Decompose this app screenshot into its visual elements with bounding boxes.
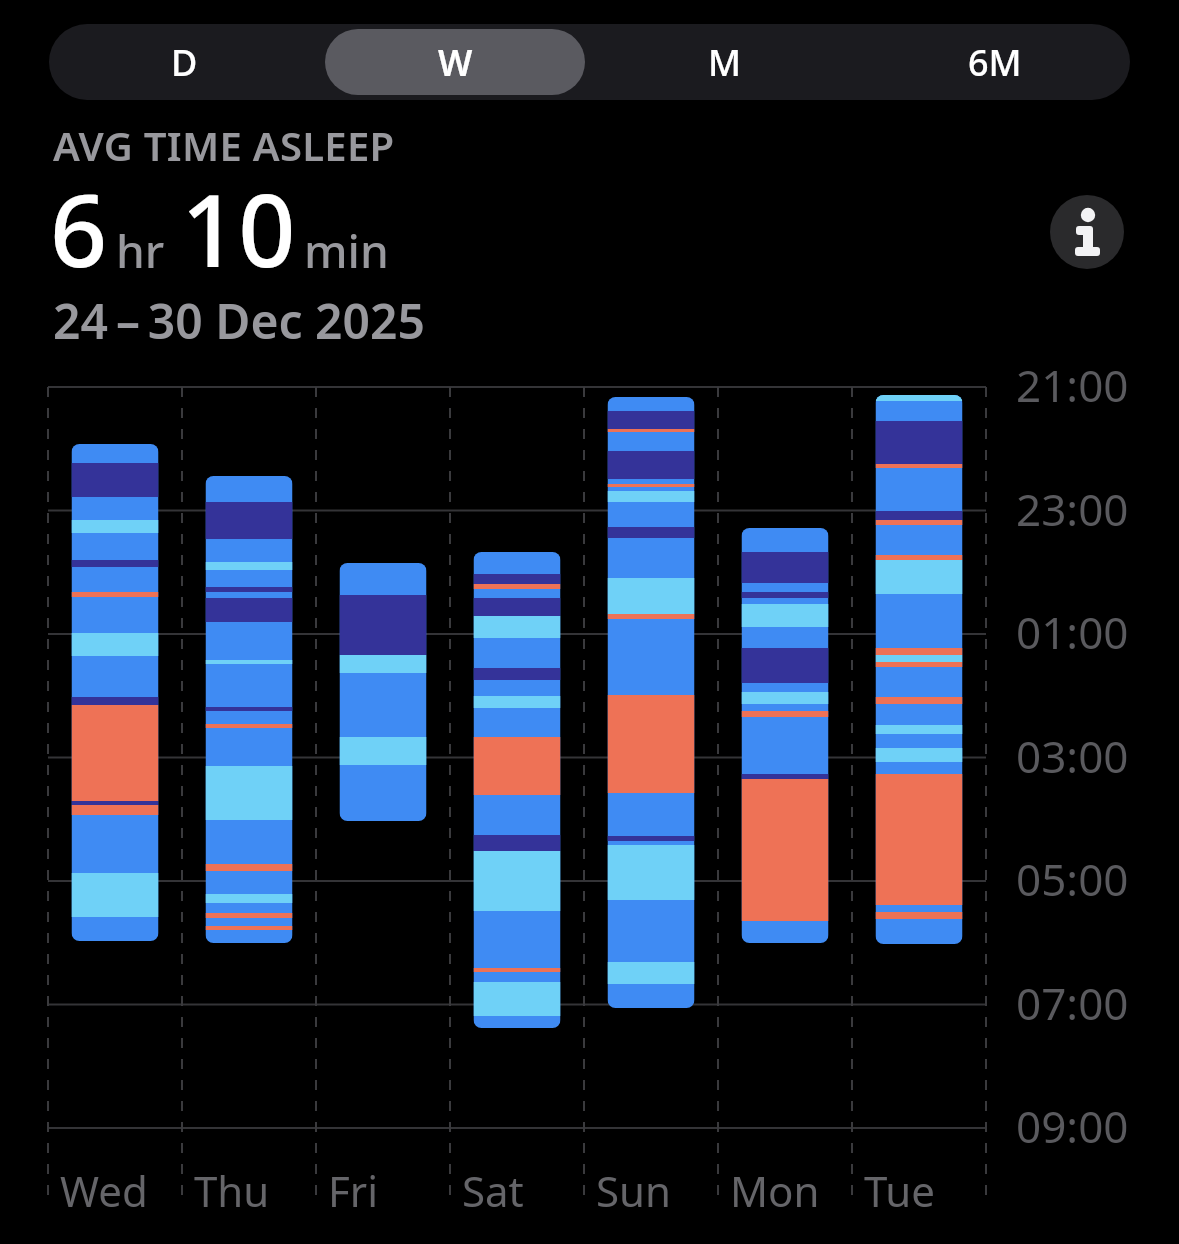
staticText: Tue	[864, 1162, 935, 1219]
staticText: Sun	[596, 1162, 671, 1219]
staticText: D	[171, 38, 198, 87]
staticText: 6	[50, 160, 108, 296]
staticText: 24 – 30 Dec 2025	[53, 288, 425, 353]
button[interactable]: M	[595, 29, 855, 95]
staticText: 07:00	[1016, 973, 1129, 1033]
staticText: min	[304, 219, 389, 282]
staticText: 01:00	[1016, 602, 1129, 662]
button[interactable]: W	[325, 29, 585, 95]
staticText: Wed	[60, 1162, 148, 1219]
staticText: 10	[181, 160, 296, 296]
staticText: 03:00	[1016, 726, 1129, 786]
button[interactable]	[1050, 195, 1124, 269]
button[interactable]: 6M	[865, 29, 1125, 95]
staticText: M	[708, 38, 742, 87]
staticText: hr	[116, 219, 165, 282]
staticText: 23:00	[1016, 479, 1129, 539]
staticText: W	[438, 38, 473, 87]
staticText: AVG TIME ASLEEP	[53, 118, 395, 172]
staticText: 05:00	[1016, 849, 1129, 909]
staticText: Thu	[194, 1162, 270, 1219]
staticText: Fri	[328, 1162, 378, 1219]
staticText: Mon	[730, 1162, 820, 1219]
button[interactable]: D	[54, 29, 315, 95]
staticText: 21:00	[1016, 355, 1129, 415]
staticText: 6M	[968, 38, 1022, 87]
staticText: Sat	[462, 1162, 524, 1219]
staticText: 09:00	[1016, 1096, 1129, 1156]
